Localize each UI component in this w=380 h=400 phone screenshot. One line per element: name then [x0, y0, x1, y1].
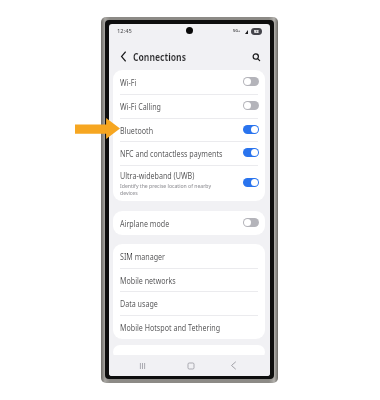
- button[interactable]: Data usage: [113, 291, 265, 315]
- button[interactable]: Turn off: [243, 125, 259, 134]
- staticText: Mobile networks: [120, 275, 177, 286]
- button[interactable]: Navigate up: [116, 49, 130, 63]
- staticText: SIM manager: [120, 251, 165, 262]
- button[interactable]: Back: [226, 358, 241, 373]
- button[interactable]: Turn on: [243, 77, 259, 86]
- staticText: Data usage: [120, 298, 158, 309]
- button[interactable]: Bluetooth: [113, 118, 265, 142]
- staticText: 12:45: [117, 27, 132, 35]
- staticText: Airplane mode: [120, 218, 170, 229]
- button[interactable]: Search: [249, 50, 263, 64]
- button[interactable]: Wi-Fi Calling: [113, 94, 265, 118]
- staticText: Ultra-wideband (UWB): [120, 170, 195, 181]
- button[interactable]: Home: [183, 358, 198, 373]
- button[interactable]: Turn off: [243, 178, 259, 187]
- button[interactable]: Mobile Hotspot and Tethering: [113, 315, 265, 339]
- staticText: 92: [254, 29, 259, 34]
- button[interactable]: Mobile networks: [113, 268, 265, 292]
- button[interactable]: Turn off: [243, 148, 259, 157]
- button[interactable]: NFC and contactless payments: [113, 141, 265, 165]
- button[interactable]: Recents: [135, 358, 150, 373]
- staticText: Connections: [133, 50, 187, 64]
- staticText: Wi-Fi: [120, 77, 136, 88]
- staticText: Wi-Fi Calling: [120, 101, 162, 112]
- button[interactable]: Airplane mode: [113, 211, 265, 235]
- button[interactable]: SIM manager: [113, 244, 265, 268]
- button[interactable]: Ultra-wideband (UWB): [113, 165, 265, 200]
- staticText: Bluetooth: [120, 125, 153, 136]
- staticText: Identify the precise location of nearby …: [120, 182, 217, 197]
- staticText: Mobile Hotspot and Tethering: [120, 322, 220, 333]
- button[interactable]: Turn on: [243, 218, 259, 227]
- other: Callout pointing at Bluetooth: [75, 118, 120, 139]
- button[interactable]: Wi-Fi: [113, 70, 265, 94]
- button[interactable]: Turn on: [243, 101, 259, 110]
- staticText: 5G+: [233, 28, 241, 33]
- staticText: NFC and contactless payments: [120, 148, 223, 159]
